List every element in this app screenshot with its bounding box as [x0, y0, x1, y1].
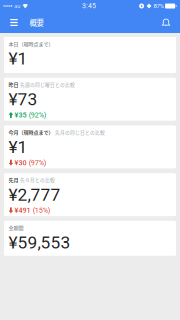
staticText: 全期間 [9, 224, 24, 231]
button[interactable]: Menu [3, 12, 24, 33]
staticText: 先週の同じ曜日との比較 [20, 81, 75, 88]
staticText: ¥1 [9, 48, 28, 69]
staticText: 本日（現時点まで） [9, 40, 54, 47]
staticText: 先月の同じ日との比較 [55, 129, 105, 135]
staticText: 今月（現時点まで） [9, 128, 54, 136]
staticText: 昨日 [9, 81, 19, 88]
staticText: (97%) [29, 158, 47, 167]
staticText: ¥59,553 [9, 232, 71, 253]
staticText: (15%) [33, 206, 51, 214]
staticText: ¥1 [9, 137, 28, 157]
staticText: 3:45 [82, 2, 96, 10]
staticText: 概要 [29, 17, 43, 28]
staticText: au [14, 3, 20, 9]
staticText: ¥35 [15, 111, 27, 119]
staticText: 先々月との比較 [20, 176, 55, 183]
staticText: 87% [153, 2, 163, 10]
staticText: 先月 [9, 176, 19, 183]
button[interactable]: Notifications [155, 12, 176, 33]
staticText: (92%) [29, 111, 47, 119]
staticText: ¥73 [9, 89, 38, 109]
staticText: ¥491 [15, 206, 31, 214]
staticText: ¥30 [15, 158, 27, 167]
staticText: ¥2,777 [9, 185, 61, 205]
